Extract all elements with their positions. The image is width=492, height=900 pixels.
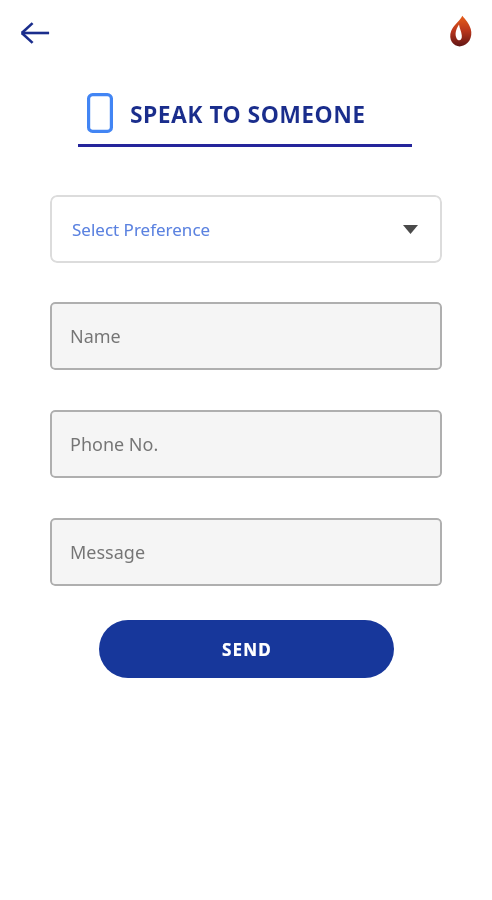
button[interactable]: Message	[50, 518, 442, 586]
button[interactable]: Select Preference	[50, 195, 442, 263]
button[interactable]: Name	[50, 302, 442, 370]
staticText: SPEAK TO SOMEONE	[130, 98, 366, 129]
button[interactable]: Phone No.	[50, 410, 442, 478]
staticText: Message	[70, 540, 146, 565]
staticText: SEND	[222, 638, 272, 661]
staticText: Select Preference	[72, 218, 211, 241]
button[interactable]: Back	[8, 8, 62, 58]
staticText: Name	[70, 324, 121, 349]
staticText: Phone No.	[70, 432, 159, 457]
button[interactable]: App logo	[436, 8, 482, 54]
button[interactable]: SEND	[99, 620, 394, 678]
